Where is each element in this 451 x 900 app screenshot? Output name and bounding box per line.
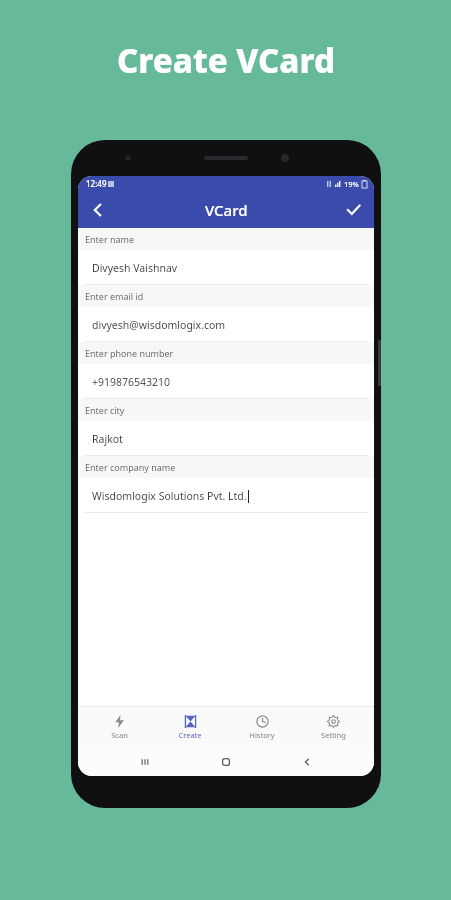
staticText: Enter company name — [85, 461, 176, 473]
button[interactable]: Back — [293, 748, 321, 776]
staticText: Scan — [111, 730, 128, 740]
button[interactable]: Rajkot — [78, 421, 374, 456]
button[interactable]: Create — [159, 706, 221, 748]
staticText: VCard — [205, 200, 248, 220]
staticText: Enter email id — [85, 290, 144, 302]
button[interactable]: History — [231, 706, 293, 748]
staticText: Divyesh Vaishnav — [92, 261, 178, 275]
staticText: Enter phone number — [85, 347, 174, 359]
button[interactable]: Recents — [131, 748, 159, 776]
staticText: Setting — [321, 730, 346, 740]
staticText: Enter city — [85, 404, 125, 416]
staticText: Create VCard — [117, 38, 335, 83]
staticText: 12:49 — [86, 178, 107, 189]
button[interactable]: +919876543210 — [78, 364, 374, 399]
button[interactable]: Setting — [302, 706, 364, 748]
staticText: Enter name — [85, 233, 135, 245]
staticText: History — [249, 730, 275, 740]
staticText: 19% — [344, 179, 359, 189]
staticText: +919876543210 — [92, 375, 171, 389]
button[interactable]: Scan — [88, 706, 150, 748]
button[interactable]: divyesh@wisdomlogix.com — [78, 307, 374, 342]
button[interactable]: Home — [212, 748, 240, 776]
button[interactable]: Back — [78, 191, 118, 228]
staticText: divyesh@wisdomlogix.com — [92, 318, 226, 332]
button[interactable]: Divyesh Vaishnav — [78, 250, 374, 285]
staticText: Wisdomlogix Solutions Pvt. Ltd. — [92, 489, 247, 503]
staticText: Rajkot — [92, 432, 123, 446]
button[interactable]: Save — [332, 191, 374, 228]
staticText: Create — [178, 730, 202, 740]
button[interactable]: Wisdomlogix Solutions Pvt. Ltd. — [78, 478, 374, 513]
